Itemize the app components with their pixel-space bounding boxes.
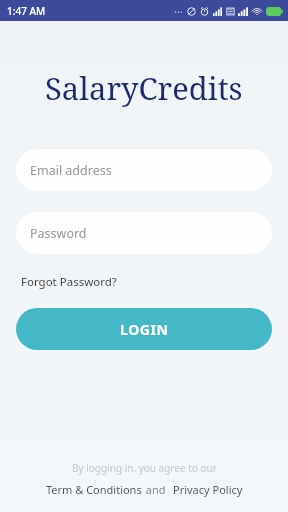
button[interactable]: Email address bbox=[16, 149, 272, 191]
other: Cellular signal bbox=[213, 7, 222, 16]
staticText: Term & Conditions bbox=[46, 482, 142, 497]
other: Battery full bbox=[266, 7, 283, 16]
staticText: SalaryCredits bbox=[45, 67, 243, 109]
other: SIM card bbox=[226, 7, 235, 16]
other: More notifications bbox=[174, 6, 183, 16]
button[interactable]: Forgot Password? bbox=[20, 272, 118, 292]
button[interactable]: Password bbox=[16, 212, 272, 254]
staticText: Privacy Policy bbox=[173, 482, 243, 497]
other: Cellular signal bbox=[238, 7, 248, 16]
staticText: LOGIN bbox=[120, 320, 169, 339]
staticText: and bbox=[143, 482, 172, 497]
staticText: Forgot Password? bbox=[21, 274, 117, 290]
button[interactable]: Privacy Policy bbox=[172, 481, 244, 498]
staticText: 1:47 AM bbox=[7, 4, 46, 18]
other: Wi-Fi bbox=[252, 7, 262, 16]
other: Alarm set bbox=[200, 7, 209, 16]
staticText: By logging in, you agree to our bbox=[72, 461, 217, 475]
button[interactable]: Term & Conditions bbox=[45, 481, 143, 498]
staticText: Password bbox=[30, 225, 87, 242]
other: Silent mode bbox=[187, 7, 196, 16]
button[interactable]: LOGIN bbox=[16, 308, 272, 350]
staticText: Email address bbox=[30, 162, 112, 179]
